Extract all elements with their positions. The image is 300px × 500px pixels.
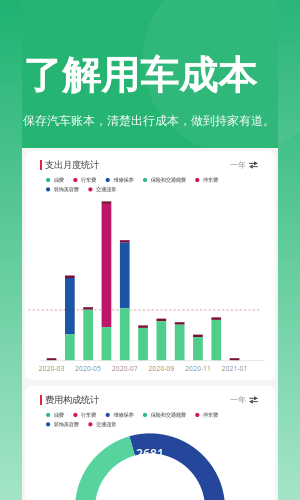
staticText: 一年	[230, 160, 246, 170]
staticText: 行车费	[81, 177, 96, 183]
staticText: 装饰美容费	[54, 186, 79, 193]
staticText: 维修保养	[113, 412, 133, 418]
staticText: 2020-11	[185, 364, 211, 373]
button[interactable]: 一年	[230, 160, 258, 170]
staticText: 2020-03	[38, 364, 64, 373]
staticText: 行车费	[81, 412, 96, 418]
staticText: 停车费	[203, 177, 218, 183]
staticText: 装饰美容费	[54, 421, 79, 428]
staticText: 维修保养	[113, 177, 133, 183]
staticText: 一年	[230, 395, 246, 405]
staticText: 交通违章	[96, 421, 116, 428]
staticText: 油费	[54, 177, 64, 183]
staticText: 费用构成统计	[45, 394, 99, 406]
staticText: 了解用车成本	[23, 52, 257, 99]
staticText: 2020-05	[75, 364, 101, 373]
staticText: 保险和交通规费	[151, 412, 186, 418]
staticText: 2021-01	[221, 364, 247, 373]
staticText: 2020-09	[148, 364, 174, 373]
staticText: 2681	[136, 445, 164, 461]
staticText: 保险和交通规费	[151, 177, 186, 183]
staticText: 支出月度统计	[45, 159, 99, 171]
staticText: 2020-07	[112, 364, 138, 373]
staticText: 停车费	[203, 412, 218, 418]
button[interactable]: 一年	[230, 395, 258, 405]
staticText: 交通违章	[96, 186, 116, 193]
staticText: 保存汽车账本，清楚出行成本，做到持家有道。	[23, 113, 275, 128]
staticText: 油费	[54, 412, 64, 418]
